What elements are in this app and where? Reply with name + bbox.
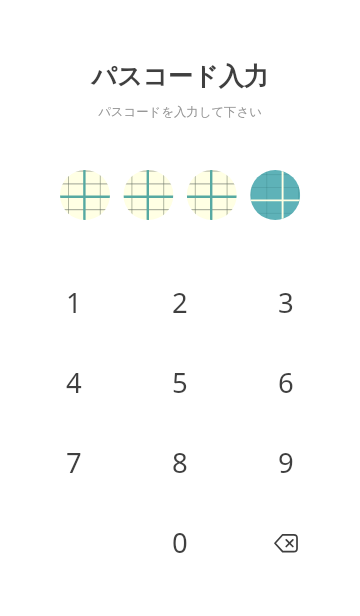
button[interactable]: 7 (21, 422, 127, 502)
button[interactable]: 1 (21, 262, 127, 342)
button[interactable]: 2 (127, 262, 233, 342)
button[interactable]: 5 (127, 342, 233, 422)
staticText: 9 (278, 444, 294, 481)
staticText: 6 (278, 364, 294, 401)
staticText: 4 (66, 364, 82, 401)
button[interactable]: 3 (233, 262, 339, 342)
button[interactable]: 8 (127, 422, 233, 502)
other: Backspace (274, 530, 298, 554)
button[interactable]: 9 (233, 422, 339, 502)
staticText: 5 (172, 364, 188, 401)
staticText: 7 (66, 444, 82, 481)
button[interactable]: Backspace (233, 502, 339, 582)
staticText: パスコードを入力して下さい (98, 104, 262, 120)
staticText: 2 (172, 284, 188, 321)
button[interactable]: 6 (233, 342, 339, 422)
button[interactable]: 0 (127, 502, 233, 582)
staticText: パスコード入力 (91, 61, 269, 92)
button[interactable]: 4 (21, 342, 127, 422)
staticText: 1 (66, 284, 82, 321)
staticText: 0 (172, 524, 188, 561)
staticText: 3 (278, 284, 294, 321)
staticText: 8 (172, 444, 188, 481)
